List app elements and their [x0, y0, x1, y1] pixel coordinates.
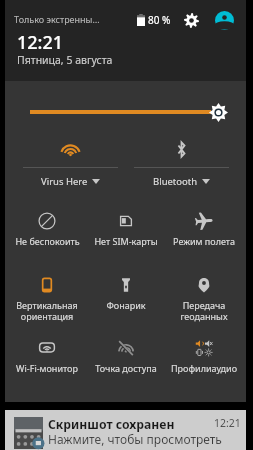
staticText: Только экстренны…: [14, 13, 100, 25]
button[interactable]: Bluetooth: [123, 131, 239, 191]
staticText: Скриншот сохранен: [48, 416, 175, 433]
staticText: Профилиаудио: [171, 362, 237, 374]
staticText: Нажмите, чтобы просмотреть: [48, 431, 222, 447]
button[interactable]: Settings: [181, 10, 201, 30]
button[interactable]: Вертикальная ориентация: [8, 268, 86, 330]
staticText: Точка доступа: [95, 362, 157, 374]
button[interactable]: Wi-Fi-монитор: [8, 331, 86, 393]
staticText: Пятница, 5 августа: [17, 53, 113, 67]
staticText: Wi-Fi-монитор: [16, 362, 78, 374]
staticText: Нет SIM-карты: [94, 235, 158, 247]
staticText: Фонарик: [106, 299, 146, 311]
button[interactable]: Brightness: [208, 102, 228, 122]
staticText: Передача геоданных: [167, 299, 241, 322]
staticText: Bluetooth: [153, 175, 198, 188]
button[interactable]: Не беспокоить: [8, 204, 86, 266]
staticText: Virus Here: [41, 175, 88, 188]
staticText: 80 %: [148, 13, 171, 27]
button[interactable]: Фонарик: [87, 268, 165, 330]
button[interactable]: User profile: [214, 10, 234, 30]
button[interactable]: Нет SIM-карты: [87, 204, 165, 266]
staticText: Режим полета: [173, 235, 235, 247]
button[interactable]: Режим полета: [165, 204, 243, 266]
staticText: 12:21: [17, 30, 64, 55]
button[interactable]: Передача геоданных: [165, 268, 243, 330]
staticText: Вертикальная ориентация: [10, 299, 84, 322]
button[interactable]: Профилиаудио: [165, 331, 243, 393]
staticText: Не беспокоить: [15, 235, 80, 247]
button[interactable]: Virus Here: [12, 131, 128, 191]
button[interactable]: Скриншот сохранен: [5, 410, 246, 450]
button[interactable]: Точка доступа: [87, 331, 165, 393]
staticText: 12:21: [214, 416, 241, 430]
